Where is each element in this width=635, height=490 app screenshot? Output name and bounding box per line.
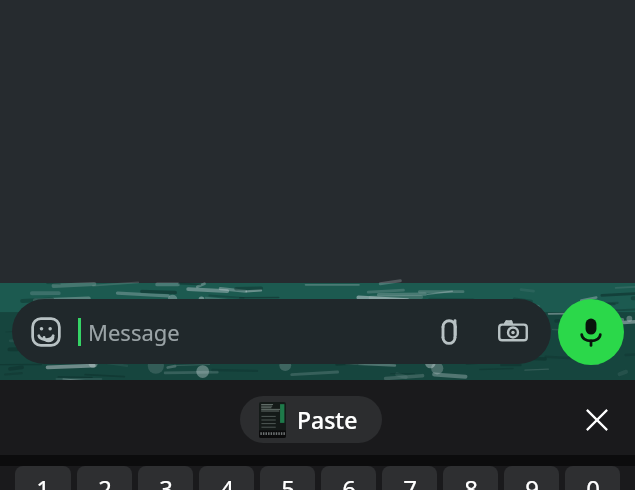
staticText: Message [88, 317, 180, 347]
button[interactable]: Attach [427, 310, 471, 354]
button[interactable]: Emoji and stickers [26, 312, 66, 352]
button[interactable]: 8 [443, 466, 498, 490]
button[interactable]: 3 [138, 466, 193, 490]
staticText: 0 [586, 472, 600, 490]
button[interactable]: Paste [240, 396, 382, 443]
button[interactable]: 0 [565, 466, 620, 490]
button[interactable]: Record voice message [558, 299, 624, 365]
button[interactable]: Emoji and stickers [12, 299, 551, 364]
staticText: 3 [159, 472, 173, 490]
staticText: 7 [403, 472, 417, 490]
button[interactable]: 6 [321, 466, 376, 490]
button[interactable]: 2 [77, 466, 132, 490]
button[interactable]: 9 [504, 466, 559, 490]
staticText: 8 [464, 472, 478, 490]
staticText: Paste [297, 404, 358, 435]
staticText: 9 [525, 472, 539, 490]
button[interactable]: Camera [491, 310, 535, 354]
button[interactable]: 4 [199, 466, 254, 490]
staticText: 4 [220, 472, 234, 490]
staticText: 2 [98, 472, 112, 490]
button[interactable]: 7 [382, 466, 437, 490]
staticText: 6 [342, 472, 356, 490]
staticText: 5 [281, 472, 295, 490]
button[interactable]: 5 [260, 466, 315, 490]
button[interactable]: Dismiss clipboard suggestion [573, 396, 621, 444]
button[interactable]: 1 [15, 466, 71, 490]
staticText: 1 [36, 472, 50, 490]
